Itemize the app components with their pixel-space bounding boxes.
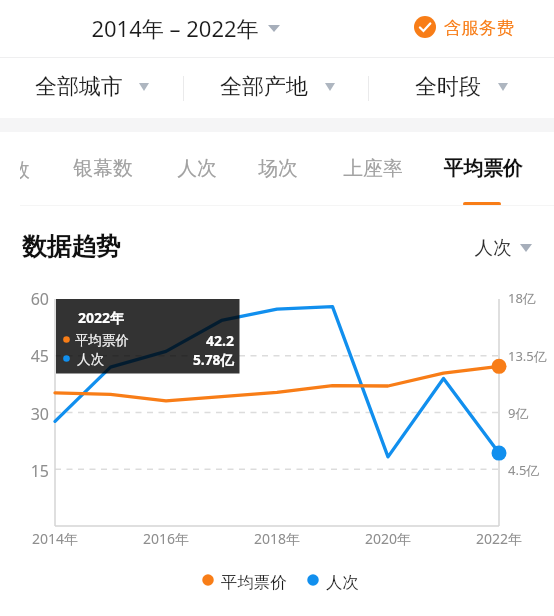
- staticText: 2014年 – 2022年: [45, 13, 305, 43]
- staticText: 平均票价: [75, 332, 155, 349]
- staticText: 平均票价: [221, 572, 321, 593]
- staticText: 18亿: [508, 289, 554, 307]
- staticText: 4.5亿: [508, 461, 554, 479]
- staticText: 人次: [122, 156, 272, 181]
- staticText: 全部产地: [184, 73, 344, 101]
- staticText: 2022年: [454, 529, 544, 548]
- staticText: 人次: [77, 351, 157, 368]
- staticText: 数: [20, 158, 24, 183]
- button[interactable]: [84, 6, 288, 51]
- button[interactable]: [65, 142, 141, 196]
- staticText: 5.78亿: [164, 350, 234, 369]
- staticText: 银幕数: [28, 156, 178, 181]
- staticText: 45: [0, 345, 49, 367]
- staticText: 平均票价: [408, 156, 554, 181]
- button[interactable]: 数: [20, 142, 34, 196]
- staticText: 9亿: [508, 404, 554, 422]
- staticText: 人次: [326, 572, 406, 593]
- staticText: 全部城市: [0, 73, 159, 101]
- staticText: 上座率: [298, 156, 448, 181]
- staticText: 全时段: [378, 73, 518, 101]
- staticText: 60: [0, 288, 49, 310]
- staticText: 2022年: [78, 308, 158, 327]
- button[interactable]: [433, 142, 533, 196]
- button[interactable]: [465, 230, 539, 264]
- staticText: 30: [0, 403, 49, 425]
- staticText: 42.2: [164, 331, 234, 350]
- staticText: 场次: [203, 156, 353, 181]
- staticText: 数据趋势: [22, 231, 182, 262]
- button[interactable]: [335, 142, 411, 196]
- staticText: 15: [0, 460, 49, 482]
- button[interactable]: [22, 66, 162, 110]
- staticText: 2016年: [121, 529, 211, 548]
- staticText: 2020年: [343, 529, 433, 548]
- button[interactable]: [408, 7, 520, 49]
- button[interactable]: [206, 66, 346, 110]
- staticText: 含服务费: [409, 17, 549, 39]
- staticText: 2014年: [10, 529, 100, 548]
- button[interactable]: [400, 66, 520, 110]
- button[interactable]: [198, 568, 298, 596]
- staticText: 13.5亿: [508, 347, 554, 365]
- staticText: 2018年: [232, 529, 322, 548]
- button[interactable]: [167, 142, 227, 196]
- button[interactable]: [248, 142, 308, 196]
- button[interactable]: [303, 568, 367, 596]
- staticText: 人次: [453, 236, 533, 259]
